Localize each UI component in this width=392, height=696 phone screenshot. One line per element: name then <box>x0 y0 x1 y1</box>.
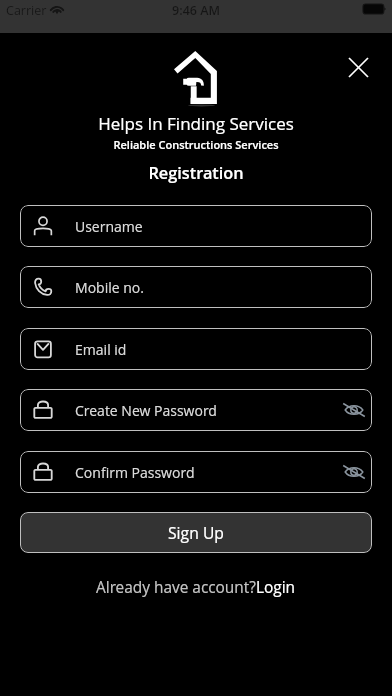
button[interactable]: Confirm Password <box>20 451 372 493</box>
button[interactable]: Mobile no. <box>20 266 372 308</box>
button[interactable]: Email id <box>20 328 372 370</box>
button[interactable]: Close <box>340 49 376 85</box>
button[interactable]: Show password <box>339 457 369 487</box>
staticText: Carrier <box>6 2 47 19</box>
button[interactable]: Show password <box>339 395 369 425</box>
staticText: Sign Up <box>168 522 224 543</box>
button[interactable]: Create New Password <box>20 389 372 431</box>
staticText: Confirm Password <box>75 463 195 482</box>
staticText: Create New Password <box>75 401 217 420</box>
staticText: Already have account? <box>96 577 256 598</box>
staticText: Helps In Finding Services <box>0 112 392 135</box>
staticText: Registration <box>0 162 392 184</box>
staticText: Reliable Constructions Services <box>0 137 392 152</box>
staticText: Mobile no. <box>75 278 145 297</box>
staticText: 9:46 AM <box>0 2 392 19</box>
button[interactable]: Login <box>256 577 296 598</box>
staticText: Username <box>75 217 143 236</box>
staticText: Email id <box>75 340 127 359</box>
button[interactable]: Username <box>20 205 372 247</box>
button[interactable]: Sign Up <box>20 512 372 553</box>
